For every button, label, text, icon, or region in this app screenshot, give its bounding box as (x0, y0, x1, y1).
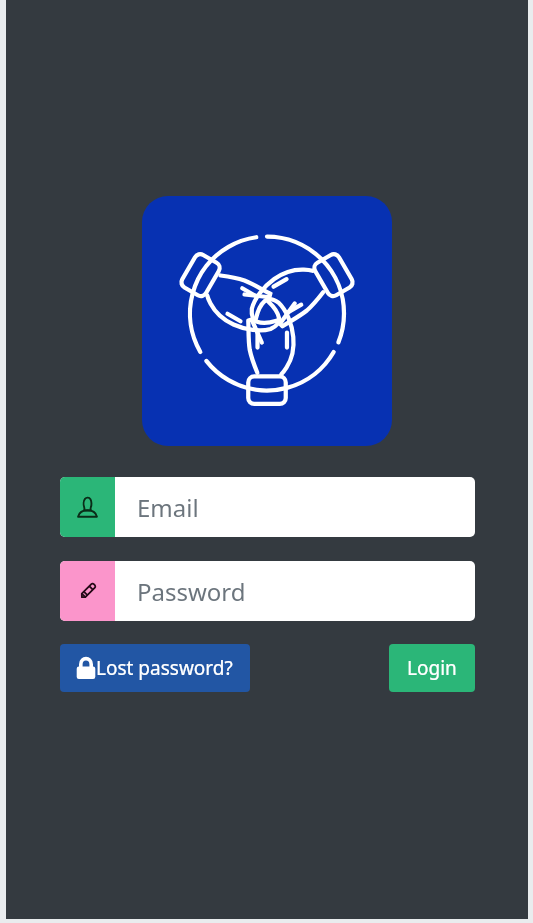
staticText: Email (137, 491, 199, 524)
other: Lost password (76, 657, 96, 679)
button[interactable]: Email (60, 477, 475, 537)
staticText: Lost password? (96, 655, 233, 681)
button[interactable]: Lost password (60, 644, 250, 692)
other: Password (60, 561, 115, 621)
other: Email (60, 477, 115, 537)
staticText: Login (407, 655, 457, 681)
button[interactable]: Login (389, 644, 475, 692)
staticText: Password (137, 575, 246, 608)
button[interactable]: Password (60, 561, 475, 621)
